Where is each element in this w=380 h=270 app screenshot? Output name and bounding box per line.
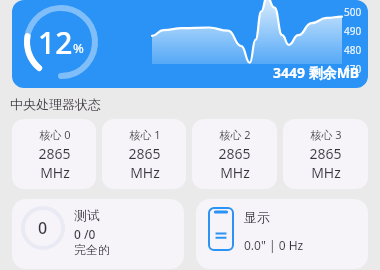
other: Display [208, 207, 234, 251]
staticText: 核心 1 [129, 127, 161, 142]
button[interactable]: 0 [12, 199, 184, 269]
staticText: MHz [40, 163, 70, 182]
staticText: % [73, 39, 84, 57]
staticText: MHz [311, 163, 341, 182]
staticText: 2865 [38, 144, 71, 163]
staticText: 2865 [128, 144, 161, 163]
staticText: 显示 [244, 209, 270, 225]
button[interactable]: 核心 1 [102, 119, 186, 189]
button[interactable]: 12 [12, 0, 368, 88]
button[interactable]: 核心 0 [12, 119, 96, 189]
staticText: 480 [344, 43, 362, 57]
staticText: 2865 [218, 144, 251, 163]
button[interactable]: Display [196, 199, 368, 269]
staticText: 500 [344, 5, 362, 19]
staticText: 中央处理器状态 [10, 96, 101, 112]
staticText: 测试 [74, 207, 100, 223]
button[interactable]: 核心 3 [283, 119, 368, 189]
staticText: 核心 3 [310, 127, 342, 142]
staticText: 2865 [309, 144, 342, 163]
button[interactable]: 核心 2 [192, 119, 277, 189]
staticText: 3449 剩余MB [273, 63, 360, 82]
staticText: 核心 2 [219, 127, 251, 142]
staticText: MHz [130, 163, 160, 182]
staticText: 0.0" | 0 Hz [244, 237, 304, 253]
staticText: 0 /0 [74, 226, 96, 242]
staticText: MHz [220, 163, 250, 182]
staticText: 12 [38, 22, 73, 63]
staticText: 完全的 [74, 242, 110, 257]
staticText: 470 [344, 62, 362, 76]
staticText: 490 [344, 24, 362, 38]
staticText: 0 [38, 217, 48, 239]
staticText: 核心 0 [39, 127, 71, 142]
